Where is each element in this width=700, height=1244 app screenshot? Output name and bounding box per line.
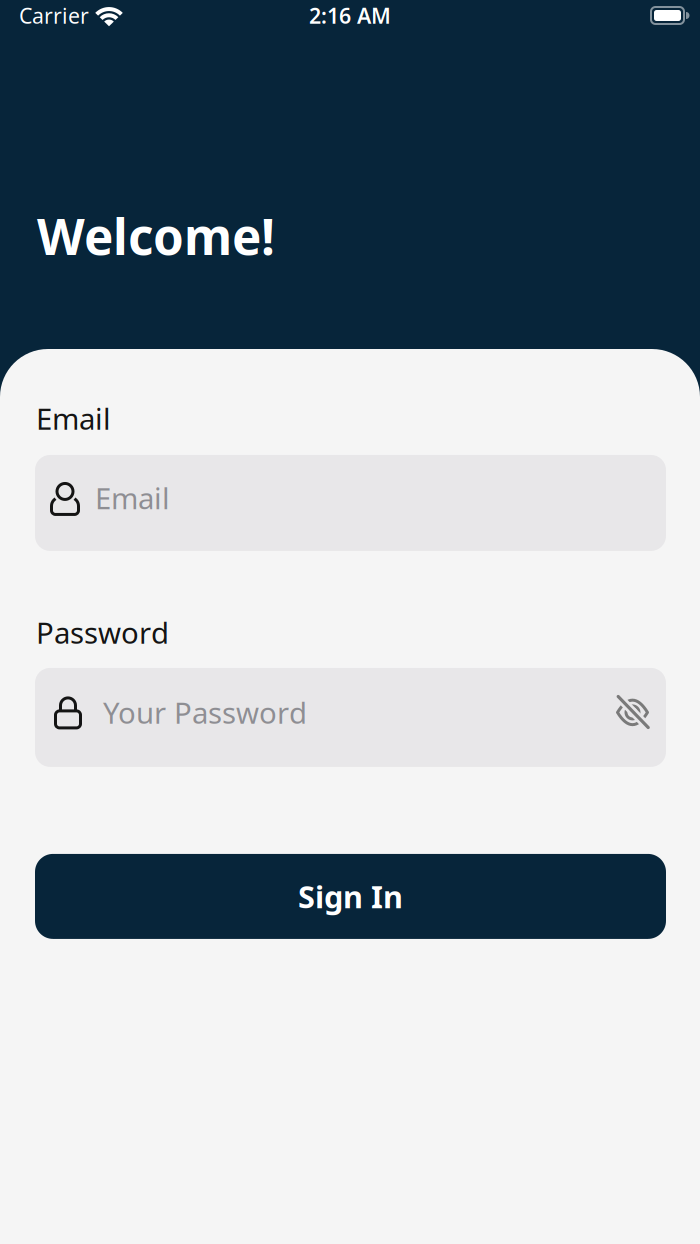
staticText: Password bbox=[36, 613, 169, 652]
staticText: Sign In bbox=[298, 876, 403, 917]
staticText: 2:16 AM bbox=[309, 1, 391, 30]
staticText: Email bbox=[95, 478, 170, 517]
button[interactable]: Sign In bbox=[35, 854, 666, 939]
staticText: Email bbox=[36, 399, 111, 438]
staticText: Your Password bbox=[103, 693, 307, 732]
button[interactable]: Your Password bbox=[35, 668, 666, 767]
staticText: Carrier bbox=[19, 1, 89, 30]
staticText: Welcome! bbox=[37, 203, 275, 268]
button[interactable]: Show password bbox=[616, 696, 649, 729]
button[interactable]: Email bbox=[35, 455, 666, 551]
